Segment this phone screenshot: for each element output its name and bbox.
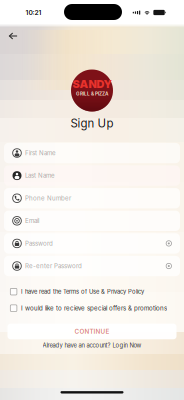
- staticText: Sign Up: [70, 116, 113, 130]
- button[interactable]: Password: [4, 233, 180, 254]
- button[interactable]: Email: [4, 211, 180, 231]
- button[interactable]: CONTINUE: [7, 324, 176, 339]
- button[interactable]: I have read the Terms of Use & Privacy P…: [0, 287, 184, 296]
- staticText: SANDY: [72, 77, 111, 91]
- button[interactable]: First Name: [4, 143, 180, 163]
- staticText: Re-enter Password: [25, 262, 82, 270]
- staticText: Password: [25, 240, 53, 247]
- staticText: CONTINUE: [74, 328, 109, 335]
- button[interactable]: Phone Number: [4, 188, 180, 208]
- button[interactable]: Already have an account? Login Now: [32, 341, 152, 349]
- staticText: I have read the Terms of Use & Privacy P…: [21, 288, 144, 295]
- button[interactable]: Back: [3, 26, 23, 46]
- staticText: Already have an account? Login Now: [42, 342, 141, 349]
- staticText: First Name: [25, 149, 56, 157]
- staticText: Email: [25, 217, 39, 224]
- button[interactable]: Re-enter Password: [4, 256, 180, 276]
- staticText: Phone Number: [25, 194, 71, 202]
- button[interactable]: I would like to recieve special offers &…: [0, 304, 184, 313]
- staticText: 10:21: [26, 8, 42, 17]
- button[interactable]: Last Name: [4, 165, 180, 186]
- staticText: I would like to recieve special offers &…: [21, 304, 167, 312]
- staticText: GRILL & PIZZA: [76, 91, 108, 97]
- staticText: Last Name: [25, 172, 55, 179]
